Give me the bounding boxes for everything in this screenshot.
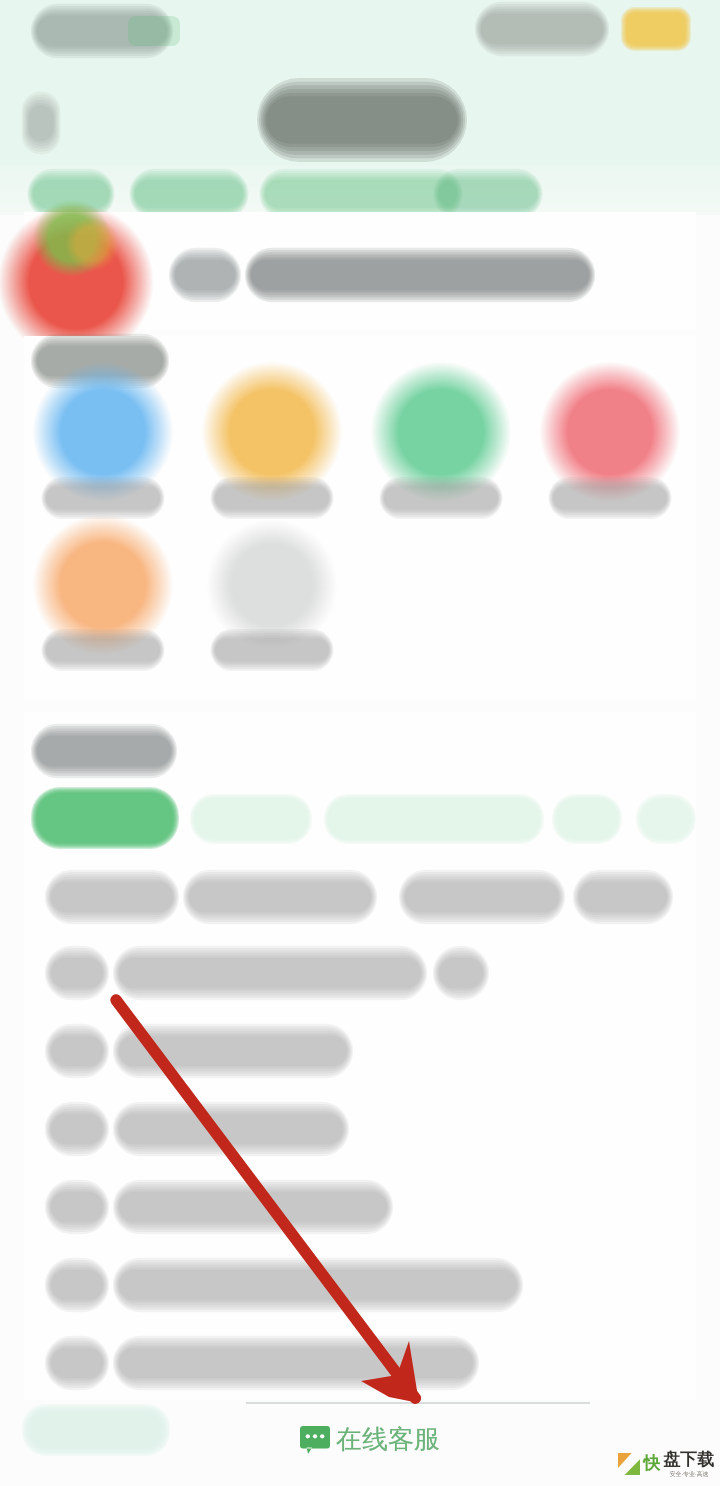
staticText: 盘下载 [663,1449,714,1470]
staticText: 在线客服 [336,1423,440,1456]
button[interactable]: 在线客服 [290,1417,450,1462]
staticText: 快 [643,1453,660,1474]
staticText: 安全·专业·高速 [669,1470,709,1478]
other: 在线客服 [300,1426,330,1454]
